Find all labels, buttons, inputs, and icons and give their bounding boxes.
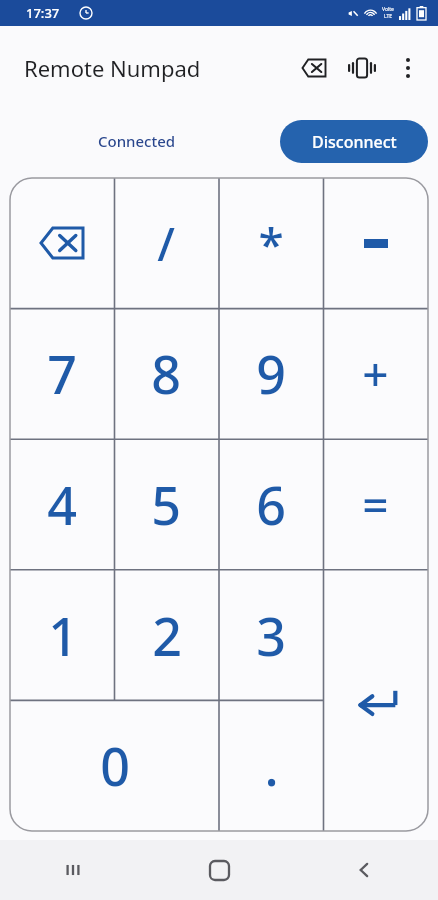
staticText: /	[157, 212, 175, 275]
button[interactable]: 0	[10, 700, 219, 831]
staticText: 3	[256, 600, 286, 671]
staticText: 4	[47, 469, 77, 540]
button[interactable]: 4	[10, 439, 114, 570]
staticText: LTE	[384, 13, 393, 20]
button[interactable]: Back	[292, 840, 438, 900]
button[interactable]: 1	[10, 570, 115, 700]
staticText: Remote Numpad	[24, 53, 201, 83]
staticText: 6	[256, 469, 286, 540]
button[interactable]: .	[219, 700, 323, 831]
staticText: 1	[48, 600, 78, 671]
staticText: 8	[151, 338, 181, 409]
button[interactable]: 9	[218, 308, 323, 439]
button[interactable]: /	[114, 178, 218, 308]
button[interactable]: +	[323, 308, 428, 439]
staticText: *	[258, 212, 284, 275]
button[interactable]	[323, 570, 428, 831]
staticText: 7	[47, 338, 77, 409]
button[interactable]: 2	[115, 570, 219, 700]
button[interactable]: =	[323, 439, 428, 570]
button[interactable]: 8	[114, 308, 218, 439]
staticText: +	[362, 342, 389, 405]
staticText: Connected	[98, 131, 176, 151]
staticText: 5	[151, 469, 181, 540]
staticText: Disconnect	[312, 131, 397, 153]
button[interactable]: 7	[10, 308, 114, 439]
staticText: 9	[256, 338, 286, 409]
button[interactable]: 6	[218, 439, 323, 570]
button[interactable]: 3	[219, 570, 323, 700]
staticText: 2	[152, 600, 182, 671]
button[interactable]: Recents	[0, 840, 146, 900]
staticText: 0	[100, 730, 130, 801]
button[interactable]: Vibrate	[338, 44, 386, 92]
staticText: Volte	[382, 6, 394, 13]
staticText: .	[264, 730, 279, 801]
button[interactable]: More options	[386, 46, 430, 90]
button[interactable]: Backspace	[290, 44, 338, 92]
button[interactable]: Home	[146, 840, 292, 900]
button[interactable]: 5	[114, 439, 218, 570]
button[interactable]	[323, 178, 428, 308]
button[interactable]	[10, 178, 114, 308]
button[interactable]: Disconnect	[280, 120, 428, 163]
button[interactable]: *	[218, 178, 323, 308]
staticText: =	[362, 473, 389, 536]
staticText: 17:37	[26, 4, 60, 22]
